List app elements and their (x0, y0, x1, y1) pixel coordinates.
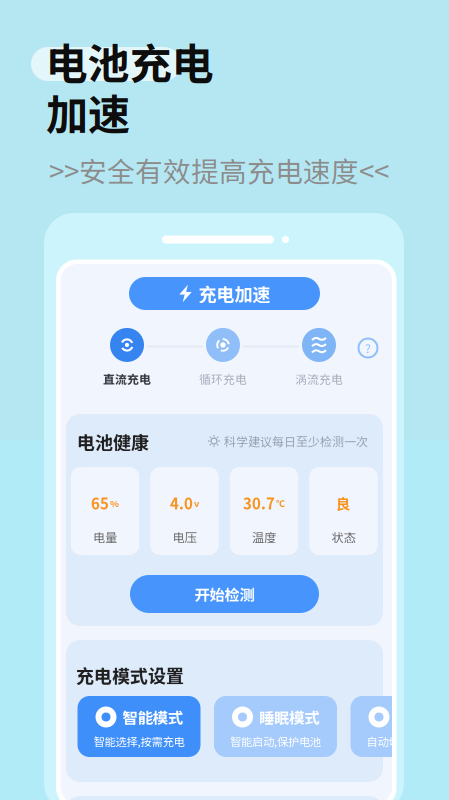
staticText: 科学建议每日至少检测一次 (224, 432, 368, 450)
button[interactable]: 循环充电 (186, 328, 260, 387)
staticText: 温度 (252, 528, 276, 546)
staticText: ? (365, 339, 371, 357)
staticText: 充电加速 (198, 280, 270, 306)
button[interactable]: 充电加速 (129, 277, 320, 310)
staticText: 65 (91, 492, 109, 514)
staticText: 充电模式设置 (76, 662, 184, 688)
button[interactable]: 涡流充电 (282, 328, 356, 387)
staticText: 电量 (93, 528, 117, 546)
staticText: 自动切换,省时省电 (366, 733, 449, 749)
staticText: 4.0 (170, 492, 193, 514)
staticText: % (110, 496, 119, 510)
staticText: 智能选择,按需充电 (93, 733, 184, 749)
staticText: 涡流充电 (295, 370, 343, 387)
staticText: 30.7 (243, 492, 275, 514)
staticText: 电压 (172, 528, 196, 546)
staticText: 智能模式 (122, 706, 182, 728)
staticText: 开始检测 (194, 583, 254, 605)
staticText: 良 (336, 492, 351, 514)
button[interactable]: 直流充电 (90, 328, 164, 387)
staticText: 加速 (46, 82, 130, 142)
button[interactable]: 智能模式 (77, 696, 200, 757)
staticText: v (194, 496, 199, 510)
staticText: >>安全有效提高充电速度<< (49, 150, 389, 190)
staticText: 状态 (331, 528, 355, 546)
button[interactable]: 帮助 (356, 336, 380, 360)
button[interactable]: 自动模式 (350, 696, 449, 757)
button[interactable]: 开始检测 (130, 575, 319, 613)
staticText: 电池充电 (45, 31, 213, 91)
button[interactable]: 睡眠模式 (214, 696, 337, 757)
staticText: 自动模式 (395, 706, 449, 728)
staticText: 智能启动,保护电池 (230, 733, 321, 749)
staticText: 循环充电 (199, 370, 247, 387)
staticText: 电池健康 (77, 428, 149, 454)
staticText: ℃ (276, 496, 285, 510)
staticText: 直流充电 (103, 370, 151, 387)
staticText: 睡眠模式 (259, 706, 319, 728)
